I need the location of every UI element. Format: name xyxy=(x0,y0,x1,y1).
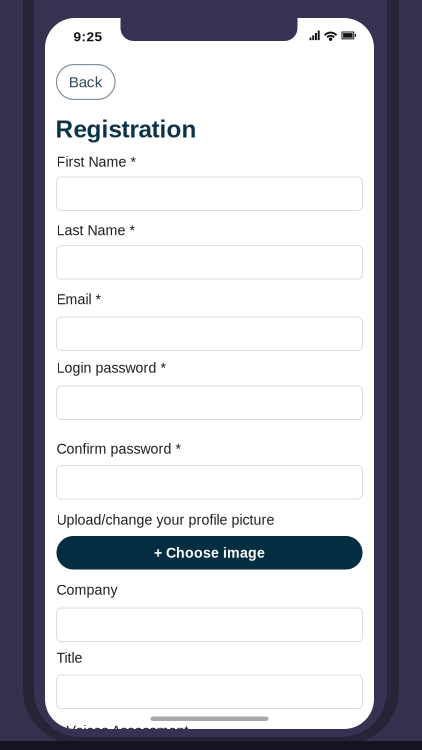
staticText: Back xyxy=(69,73,103,90)
staticText: Registration xyxy=(55,115,196,143)
staticText: Last Name * xyxy=(56,222,135,238)
button[interactable]: + Choose image xyxy=(56,536,362,569)
staticText: First Name * xyxy=(56,154,136,170)
staticText: Confirm password * xyxy=(56,441,181,457)
staticText: Email * xyxy=(56,291,101,307)
staticText: Upload/change your profile picture xyxy=(56,512,274,528)
staticText: + Choose image xyxy=(154,545,265,561)
staticText: * Voices Assessment xyxy=(56,723,188,739)
staticText: Title xyxy=(56,650,82,666)
staticText: 9:25 xyxy=(73,29,102,44)
button[interactable]: Back xyxy=(56,65,115,99)
staticText: Login password * xyxy=(56,360,166,376)
staticText: Company xyxy=(56,582,117,598)
